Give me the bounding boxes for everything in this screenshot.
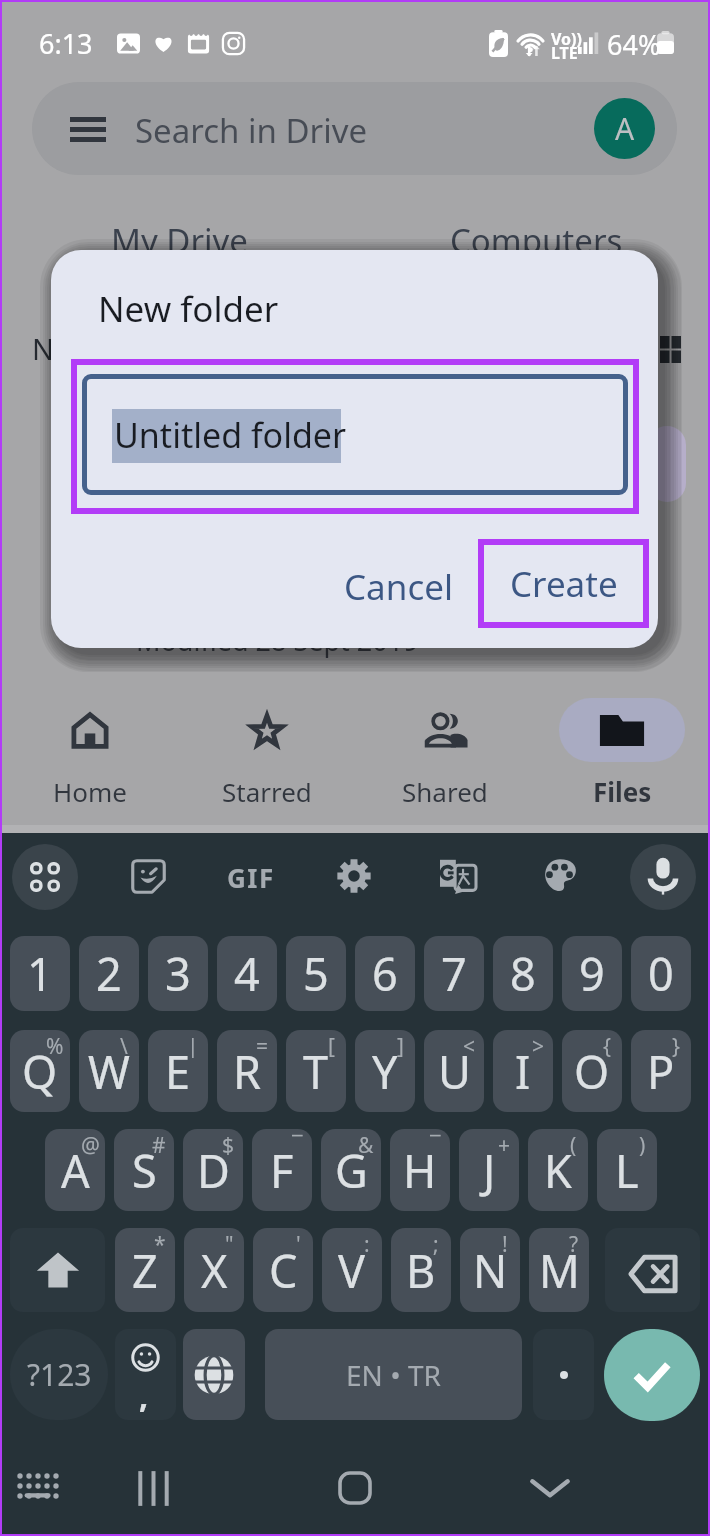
staticText: My Drive (111, 218, 248, 263)
button[interactable]: W (79, 1030, 139, 1112)
button[interactable]: 4 (217, 936, 277, 1011)
staticText: V (338, 1240, 366, 1301)
staticText: 9 (579, 943, 605, 1004)
button[interactable]: Home (0, 678, 179, 833)
staticText: : (364, 1230, 370, 1256)
button[interactable]: T (286, 1030, 346, 1112)
button[interactable]: S (114, 1129, 174, 1211)
button[interactable]: I (493, 1030, 553, 1112)
button[interactable]: B (391, 1228, 451, 1312)
staticText: J (483, 1140, 496, 1201)
button[interactable]: Recent apps (119, 1454, 187, 1522)
button[interactable]: K (528, 1129, 588, 1211)
staticText: < (463, 1032, 476, 1058)
button[interactable]: Q (10, 1030, 70, 1112)
staticText: 7 (441, 943, 467, 1004)
button[interactable]: Show keyboard layout (6, 1454, 70, 1518)
button[interactable]: P (631, 1030, 691, 1112)
button[interactable]: ?123 (10, 1329, 108, 1420)
button[interactable]: 7 (424, 936, 484, 1011)
button[interactable]: Y (355, 1030, 415, 1112)
button[interactable]: Hide keyboard (516, 1454, 584, 1522)
button[interactable]: J (459, 1129, 519, 1211)
button[interactable]: 9 (562, 936, 622, 1011)
button[interactable]: 2 (79, 936, 139, 1011)
button[interactable]: Open navigation drawer (60, 103, 120, 155)
button[interactable]: Create (478, 539, 649, 628)
staticText: F (270, 1140, 294, 1201)
staticText: 8 (510, 943, 536, 1004)
button[interactable]: C (253, 1228, 313, 1312)
button[interactable]: Files (532, 678, 710, 833)
button[interactable]: Open navigation drawer (32, 82, 677, 175)
staticText: U (438, 1041, 471, 1102)
staticText: A (61, 1140, 90, 1201)
button[interactable]: G (321, 1129, 381, 1211)
staticText: \ (120, 1032, 128, 1058)
button[interactable]: Change language (183, 1329, 245, 1420)
staticText: T (303, 1041, 329, 1102)
staticText: B (406, 1240, 436, 1301)
button[interactable]: 1 (10, 936, 70, 1011)
staticText: | (187, 1032, 199, 1058)
staticText: + (498, 1131, 511, 1157)
button[interactable]: Z (115, 1228, 175, 1312)
staticText: , (139, 1374, 149, 1418)
staticText: C (269, 1240, 298, 1301)
button[interactable]: 3 (148, 936, 208, 1011)
staticText: X (201, 1240, 228, 1301)
button[interactable]: GIF (215, 853, 287, 901)
button[interactable]: Untitled folder (82, 374, 628, 495)
staticText: * (154, 1230, 166, 1256)
staticText: G (335, 1140, 368, 1201)
staticText: 3 (165, 943, 191, 1004)
staticText: } (672, 1032, 680, 1058)
button[interactable]: Cancel (321, 552, 476, 622)
button[interactable]: Voice input (630, 844, 696, 910)
staticText: New folder (98, 285, 279, 333)
button[interactable]: Shift (10, 1228, 105, 1312)
button[interactable]: EN • TR (265, 1329, 522, 1420)
button[interactable]: Starred (177, 678, 356, 833)
staticText: ?123 (27, 1354, 92, 1395)
button[interactable]: 5 (286, 936, 346, 1011)
button[interactable]: H (390, 1129, 450, 1211)
button[interactable]: V (322, 1228, 382, 1312)
button[interactable]: E (148, 1030, 208, 1112)
button[interactable]: Emoji (115, 1329, 176, 1420)
button[interactable]: Shared (355, 678, 534, 833)
button[interactable]: D (183, 1129, 243, 1211)
staticText: N (32, 329, 55, 368)
button[interactable]: Settings (323, 845, 385, 907)
staticText: ' (296, 1230, 301, 1256)
button[interactable]: M (529, 1228, 589, 1312)
button[interactable]: Themes (529, 844, 591, 906)
button[interactable]: Account (594, 98, 655, 159)
staticText: N (473, 1240, 508, 1301)
button[interactable]: 6 (355, 936, 415, 1011)
button[interactable]: 8 (493, 936, 553, 1011)
button[interactable]: Backspace (605, 1228, 700, 1312)
staticText: Create (510, 560, 618, 608)
button[interactable] (533, 1329, 594, 1420)
button[interactable]: X (184, 1228, 244, 1312)
button[interactable]: N (460, 1228, 520, 1312)
button[interactable]: L (597, 1129, 657, 1211)
staticText: 4 (234, 943, 260, 1004)
staticText: H (403, 1140, 437, 1201)
button[interactable]: O (562, 1030, 622, 1112)
button[interactable]: Apps (12, 844, 78, 910)
button[interactable]: U (424, 1030, 484, 1112)
button[interactable]: A (45, 1129, 105, 1211)
button[interactable]: Done (604, 1329, 700, 1421)
staticText: Y (372, 1041, 398, 1102)
staticText: Modified 28 Sept 2019 (136, 622, 419, 659)
button[interactable]: R (217, 1030, 277, 1112)
button[interactable]: Home (321, 1454, 389, 1522)
staticText: " (225, 1230, 234, 1256)
button[interactable]: 0 (631, 936, 691, 1011)
button[interactable]: Translate (426, 844, 490, 908)
button[interactable]: Stickers (117, 845, 180, 908)
button[interactable]: F (252, 1129, 312, 1211)
staticText: W (88, 1041, 130, 1102)
